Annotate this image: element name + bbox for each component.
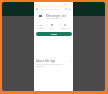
- staticText: Install: [51, 33, 57, 36]
- staticText: About this app: [36, 59, 56, 63]
- staticText: Meta Platforms, Inc.: [46, 17, 62, 19]
- staticText: Messenger: [36, 65, 45, 67]
- staticText: 9:41: [36, 3, 41, 6]
- staticText: Rated for 3+: [61, 27, 70, 29]
- staticText: 12M reviews: [36, 27, 45, 29]
- button[interactable]: Back: [36, 7, 71, 11]
- staticText: ›: [70, 59, 71, 63]
- staticText: Search for apps & games: [39, 8, 59, 10]
- staticText: Messenger Lite is a faster version of: [36, 63, 63, 65]
- button[interactable]: About this app: [36, 58, 71, 63]
- staticText: 4.1★: [37, 24, 42, 27]
- staticText: Messenger Lite: [46, 14, 67, 18]
- staticText: ▪ ▪ ▪: [62, 3, 68, 6]
- button[interactable]: Install: [36, 32, 72, 36]
- staticText: 10M+: [49, 27, 53, 29]
